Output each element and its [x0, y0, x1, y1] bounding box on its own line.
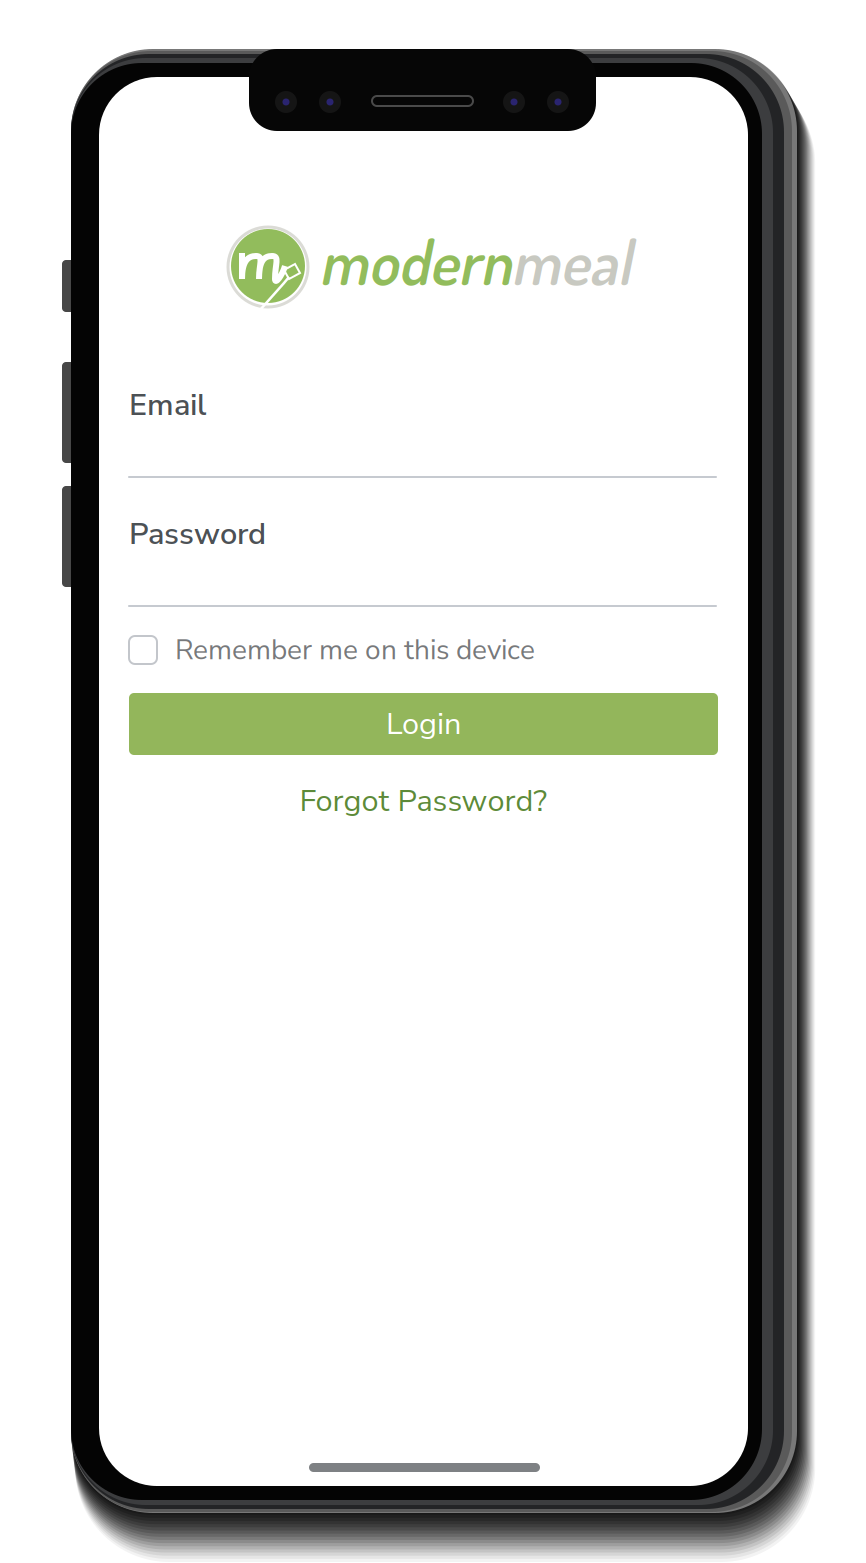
staticText: Login [386, 703, 461, 745]
staticText: modern [319, 222, 511, 300]
staticText: Remember me on this device [175, 631, 535, 669]
staticText: Forgot Password? [299, 780, 547, 822]
staticText: Password [129, 513, 266, 555]
staticText: Email [129, 384, 206, 426]
button[interactable]: Login [129, 693, 718, 755]
button[interactable]: Remember me on this device [129, 628, 718, 672]
staticText: meal [511, 222, 631, 300]
button[interactable]: Forgot Password? [129, 778, 718, 824]
